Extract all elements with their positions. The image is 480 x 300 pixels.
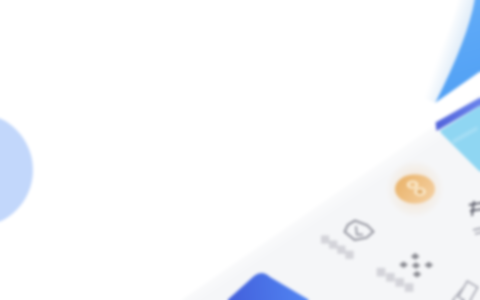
button[interactable]: Rewards (395, 171, 437, 207)
button[interactable]: More services (401, 252, 433, 280)
button[interactable]: Account security (344, 217, 376, 245)
